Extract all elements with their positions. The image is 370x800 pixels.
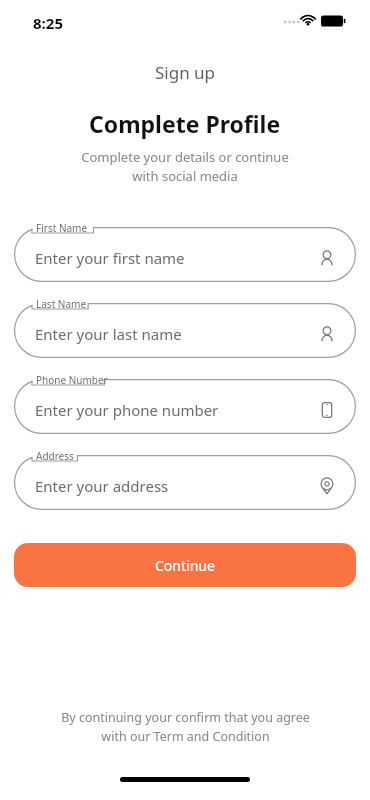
button[interactable]: First Name	[14, 227, 356, 282]
button[interactable]: Phone Number	[14, 379, 356, 434]
staticText: Enter your last name	[35, 324, 182, 344]
staticText: Enter your first name	[35, 248, 185, 268]
staticText: Last Name	[36, 297, 87, 311]
staticText: By continuing your confirm that you agre…	[61, 709, 310, 745]
staticText: Enter your phone number	[35, 400, 219, 420]
staticText: Complete Profile	[89, 108, 281, 139]
staticText: Enter your address	[35, 476, 169, 496]
staticText: First Name	[36, 221, 88, 235]
button[interactable]: Last Name	[14, 303, 356, 358]
staticText: Sign up	[155, 61, 216, 84]
staticText: Address	[36, 449, 74, 463]
staticText: Continue	[155, 556, 215, 575]
staticText: Phone Number	[36, 373, 108, 387]
button[interactable]: Continue	[14, 543, 356, 587]
staticText: 8:25	[33, 13, 63, 33]
staticText: Complete your details or continue with s…	[81, 148, 289, 185]
button[interactable]: Address	[14, 455, 356, 510]
